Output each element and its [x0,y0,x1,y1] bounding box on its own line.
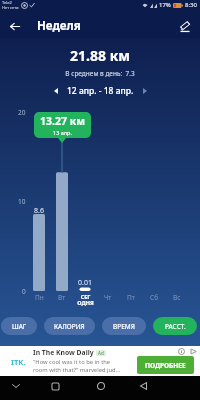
button[interactable]: ВРЕМЯ [102,317,146,335]
button[interactable]: Информация [176,346,187,357]
staticText: ШАГ [12,322,27,331]
staticText: 0 [22,287,26,296]
button[interactable]: Недавние приложения [43,376,67,396]
staticText: 20 [18,108,26,117]
button[interactable]: ПОДРОБНЕЕ [137,356,194,374]
staticText: 12 апр. - 18 апр. [67,85,134,97]
staticText: 10 [18,197,26,206]
staticText: In The Know Daily [33,348,94,357]
staticText: ITK. [11,357,26,367]
staticText: РАССТ. [165,322,186,331]
staticText: room with that?" marveled jud... [33,366,121,374]
button[interactable]: Предыдущая неделя [49,84,63,98]
staticText: Tele2 [2,0,12,5]
button[interactable]: Главный экран [89,376,113,396]
staticText: ПОДРОБНЕЕ [145,361,186,370]
staticText: "How cool was it to be in the [33,358,111,366]
button[interactable]: ШАГ [1,317,37,335]
staticText: Нет сети [2,5,19,10]
staticText: 17% [159,1,171,9]
staticText: Сб [150,293,159,302]
button[interactable]: Следующая неделя [138,84,152,98]
staticText: Пт [127,293,135,302]
staticText: 21.88 км [0,46,200,65]
staticText: Неделя [37,18,81,34]
button[interactable]: Скрыть клавиатуру [4,376,28,396]
staticText: 13 апр. [53,129,72,136]
staticText: КАЛОРИЯ [54,322,85,331]
staticText: Вс [173,293,181,302]
staticText: Вт [58,293,66,302]
staticText: 8.6 [34,206,44,216]
staticText: Пн [35,293,44,302]
staticText: 13.27 км [40,114,85,128]
staticText: ВРЕМЯ [113,322,135,331]
button[interactable]: AdChoices [188,346,199,357]
staticText: 0.01 [78,278,92,288]
staticText: СЕГ ОДНЯ [77,293,94,307]
staticText: 8:30 [185,1,197,9]
button[interactable]: КАЛОРИЯ [44,317,95,335]
staticText: В среднем в день: 7.3 [0,69,200,78]
button[interactable]: Назад [0,14,30,38]
staticText: Ad [98,350,104,356]
button[interactable]: Назад [131,376,155,396]
button[interactable]: РАССТ. [153,317,197,335]
staticText: Чт [104,293,112,302]
button[interactable]: Изменить [172,14,198,38]
